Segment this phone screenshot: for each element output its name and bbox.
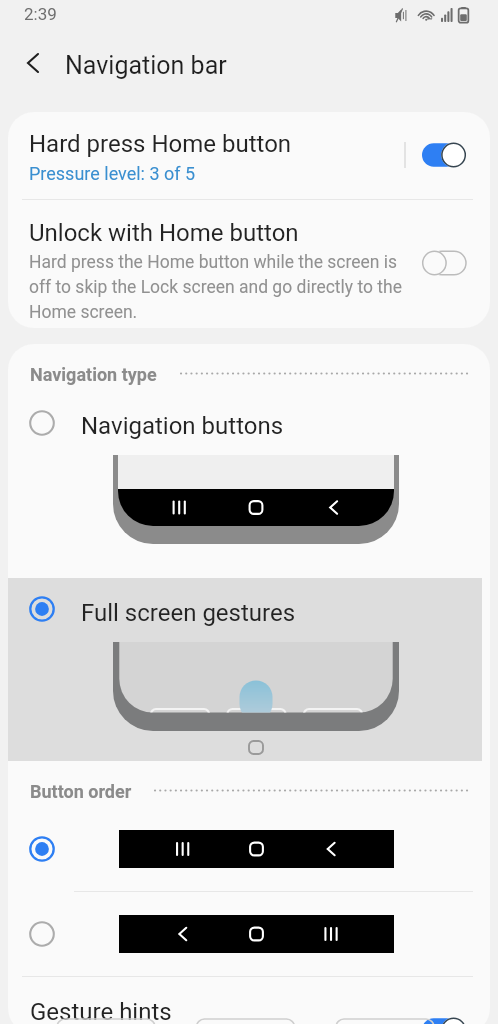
staticText: Pressure level: 3 of 5 bbox=[29, 163, 196, 184]
staticText: Hard press the Home button while the scr… bbox=[29, 252, 404, 322]
button[interactable]: Gesture hints bbox=[422, 1017, 466, 1024]
button[interactable]: Navigation buttons bbox=[8, 390, 490, 578]
button[interactable]: Unlock with Home button bbox=[422, 250, 466, 276]
staticText: 2:39 bbox=[24, 4, 57, 24]
staticText: Navigation bar bbox=[65, 51, 227, 80]
button[interactable] bbox=[8, 897, 490, 967]
staticText: Button order bbox=[30, 781, 132, 802]
button[interactable] bbox=[8, 812, 490, 882]
staticText: Full screen gestures bbox=[81, 599, 296, 627]
button[interactable]: Hard press Home button bbox=[422, 142, 466, 168]
staticText: Gesture hints bbox=[30, 998, 172, 1024]
staticText: Navigation type bbox=[30, 364, 157, 385]
button[interactable]: Full screen gestures bbox=[8, 578, 490, 761]
staticText: Hard press Home button bbox=[29, 130, 292, 158]
staticText: Navigation buttons bbox=[81, 412, 284, 440]
button[interactable]: Back bbox=[14, 44, 52, 82]
staticText: Unlock with Home button bbox=[29, 219, 299, 247]
button[interactable]: Gesture hints bbox=[8, 984, 490, 1024]
